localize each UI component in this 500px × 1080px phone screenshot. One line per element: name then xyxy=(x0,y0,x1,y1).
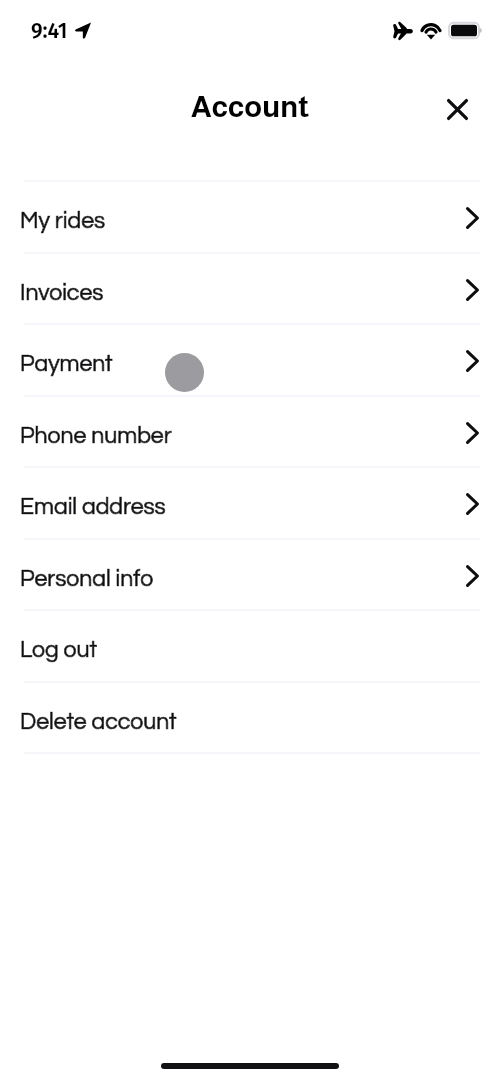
staticText: Payment xyxy=(20,352,113,376)
button[interactable]: Log out xyxy=(0,609,500,681)
staticText: Email address xyxy=(20,495,166,519)
staticText: My rides xyxy=(20,209,106,233)
staticText: Invoices xyxy=(20,281,104,305)
button[interactable]: Phone number xyxy=(0,395,500,467)
staticText: Email address xyxy=(20,495,166,519)
button[interactable]: Delete account xyxy=(0,681,500,753)
staticText: Delete account xyxy=(20,710,177,734)
staticText: 9:41 xyxy=(31,18,68,43)
button[interactable]: Close xyxy=(435,87,480,132)
staticText: Account xyxy=(190,90,310,123)
button[interactable]: Email address xyxy=(0,466,500,538)
staticText: My rides xyxy=(20,209,106,233)
button[interactable]: Invoices xyxy=(0,252,500,324)
staticText: Phone number xyxy=(20,424,172,448)
button[interactable]: Payment xyxy=(0,323,500,395)
staticText: Invoices xyxy=(20,281,104,305)
staticText: Personal info xyxy=(20,567,154,591)
staticText: Personal info xyxy=(20,567,154,591)
button[interactable]: Personal info xyxy=(0,538,500,610)
staticText: Log out xyxy=(20,638,98,662)
staticText: Delete account xyxy=(20,710,177,734)
staticText: Log out xyxy=(20,638,98,662)
staticText: Phone number xyxy=(20,424,172,448)
button[interactable]: My rides xyxy=(0,180,500,252)
staticText: Payment xyxy=(20,352,113,376)
